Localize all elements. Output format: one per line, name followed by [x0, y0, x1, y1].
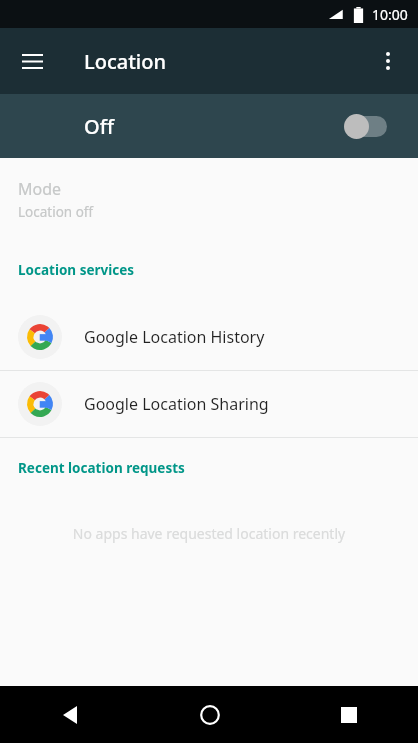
staticText: Google Location Sharing [84, 393, 269, 415]
staticText: No apps have requested location recently [0, 524, 418, 543]
staticText: Mode [18, 178, 62, 200]
button[interactable]: Recent apps [279, 686, 418, 743]
button[interactable]: Home [140, 686, 279, 743]
staticText: Off [84, 113, 114, 140]
button[interactable]: Google Location Sharing [0, 371, 418, 437]
button[interactable]: Off [0, 94, 418, 158]
button[interactable]: Open navigation drawer [8, 37, 56, 85]
button[interactable]: More options [364, 37, 412, 85]
staticText: Recent location requests [18, 459, 185, 477]
staticText: Location off [18, 203, 94, 221]
button[interactable]: Mode [0, 158, 418, 235]
button[interactable]: Google Location History [0, 304, 418, 370]
staticText: Location services [18, 261, 135, 279]
staticText: 10:00 [372, 5, 408, 24]
staticText: Location [84, 48, 166, 75]
staticText: Google Location History [84, 326, 265, 348]
button[interactable]: Back [0, 686, 140, 743]
